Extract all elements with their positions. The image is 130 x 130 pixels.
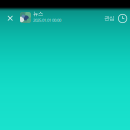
button[interactable]: 관심: [102, 12, 116, 25]
staticText: 뉴스: [33, 10, 43, 17]
button[interactable]: Close: [3, 11, 18, 26]
button[interactable]: Recent: [117, 12, 129, 24]
staticText: 관심: [104, 15, 114, 21]
staticText: 2025.01.01 00:00: [33, 17, 61, 23]
